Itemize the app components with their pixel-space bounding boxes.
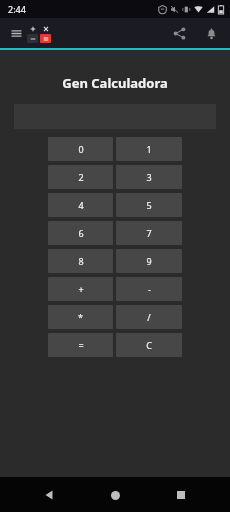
button[interactable]: 9 bbox=[116, 249, 182, 273]
button[interactable]: Recents bbox=[164, 478, 198, 512]
staticText: Gen Calculadora bbox=[0, 74, 230, 92]
button[interactable]: + bbox=[48, 277, 113, 301]
button[interactable]: 1 bbox=[116, 137, 182, 161]
staticText: 0 bbox=[78, 143, 84, 155]
button[interactable]: 2 bbox=[48, 165, 113, 189]
staticText: 2 bbox=[78, 171, 84, 183]
button[interactable]: * bbox=[48, 305, 113, 329]
button[interactable]: Home bbox=[98, 478, 132, 512]
button[interactable]: 7 bbox=[116, 221, 182, 245]
staticText: 6 bbox=[78, 227, 84, 239]
staticText: 9 bbox=[146, 255, 152, 267]
staticText: 8 bbox=[78, 255, 84, 267]
button[interactable]: Menu bbox=[6, 23, 26, 43]
button[interactable]: C bbox=[116, 333, 182, 357]
button[interactable]: - bbox=[116, 277, 182, 301]
button[interactable]: Gen Calculadora logo bbox=[27, 24, 51, 43]
staticText: 1 bbox=[146, 143, 152, 155]
staticText: - bbox=[148, 283, 151, 295]
button[interactable]: 6 bbox=[48, 221, 113, 245]
button[interactable]: 0 bbox=[48, 137, 113, 161]
button[interactable]: 3 bbox=[116, 165, 182, 189]
button[interactable]: / bbox=[116, 305, 182, 329]
staticText: 4 bbox=[78, 199, 84, 211]
button[interactable]: 4 bbox=[48, 193, 113, 217]
button[interactable]: 5 bbox=[116, 193, 182, 217]
staticText: + bbox=[78, 283, 84, 295]
staticText: 7 bbox=[146, 227, 152, 239]
staticText: 3 bbox=[146, 171, 152, 183]
staticText: / bbox=[147, 311, 151, 323]
staticText: C bbox=[146, 339, 152, 351]
button[interactable]: 8 bbox=[48, 249, 113, 273]
staticText: = bbox=[78, 339, 84, 351]
staticText: * bbox=[78, 311, 83, 323]
button[interactable]: = bbox=[48, 333, 113, 357]
button[interactable]: Share bbox=[168, 22, 190, 44]
staticText: 5 bbox=[146, 199, 152, 211]
button[interactable]: Back bbox=[32, 478, 66, 512]
button[interactable]: Notifications bbox=[200, 22, 222, 44]
staticText: 2:44 bbox=[8, 3, 26, 15]
